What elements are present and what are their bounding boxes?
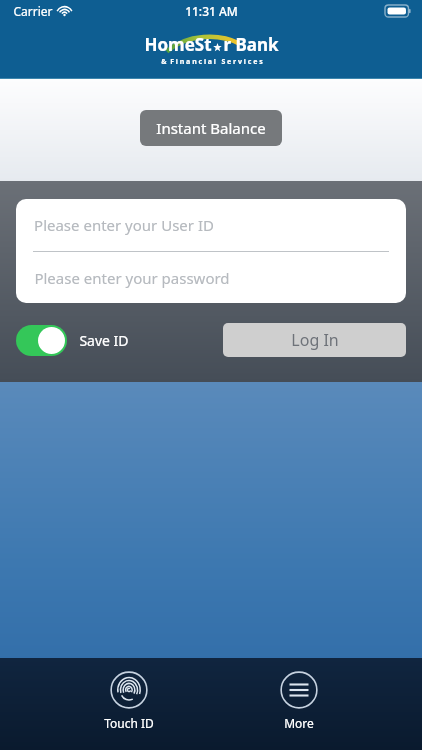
staticText: r Bank [223,33,279,56]
staticText: Please enter your password [34,268,230,288]
button[interactable]: Please enter your User ID [16,199,406,251]
staticText: Instant Balance [156,118,266,138]
staticText: Touch ID [104,715,154,731]
staticText: 11:31 AM [185,3,238,19]
button[interactable]: More [258,669,340,733]
staticText: Carrier [13,3,53,19]
staticText: Save ID [79,331,129,350]
staticText: More [284,715,314,731]
button[interactable]: Please enter your password [16,252,406,303]
button[interactable]: Save ID [16,325,129,356]
staticText: Log In [291,329,339,351]
button[interactable]: Instant Balance [140,110,282,146]
staticText: & F i n a n c i a l S e r v i c e s [161,57,263,67]
button[interactable]: Log In [223,323,406,357]
staticText: Please enter your User ID [34,215,214,235]
button[interactable]: Touch ID [82,669,176,733]
staticText: HomeSt [144,33,212,56]
